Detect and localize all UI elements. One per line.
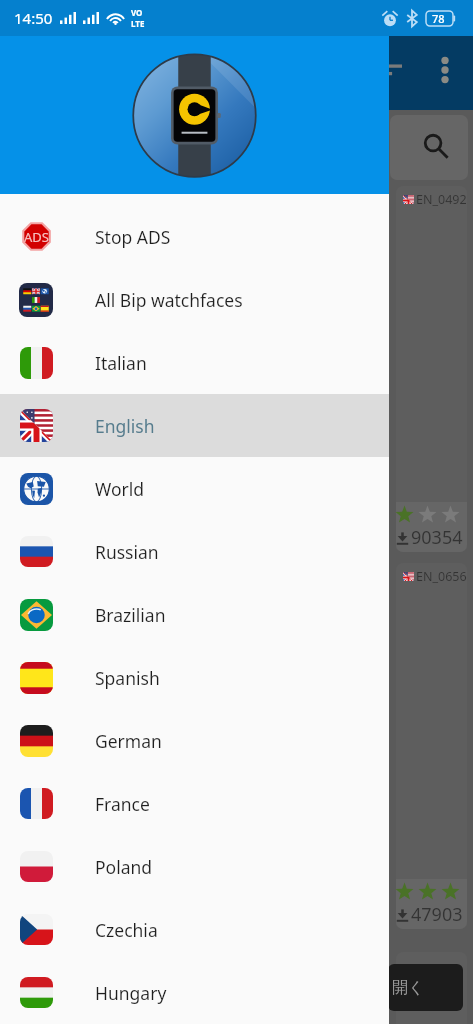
button[interactable]: Hungary <box>0 961 389 1024</box>
button[interactable] <box>396 186 467 552</box>
staticText: Czechia <box>95 918 158 942</box>
button[interactable]: ADS <box>0 205 389 268</box>
staticText: 開く <box>392 978 425 998</box>
staticText: German <box>95 729 162 753</box>
button[interactable] <box>396 563 467 929</box>
staticText: EN_0656 <box>416 568 467 585</box>
button[interactable]: 開く <box>388 964 463 1011</box>
button[interactable]: Czechia <box>0 898 389 961</box>
staticText: 78 <box>432 11 445 26</box>
staticText: Spanish <box>95 666 160 690</box>
button[interactable]: Poland <box>0 835 389 898</box>
staticText: Russian <box>95 540 159 564</box>
button[interactable]: Search <box>390 115 468 180</box>
staticText: 90354 <box>411 525 463 550</box>
button[interactable]: Sort <box>372 58 402 88</box>
button[interactable]: All Bip watchfaces <box>0 268 389 331</box>
staticText: Poland <box>95 855 153 879</box>
button[interactable]: More options <box>437 56 453 84</box>
button[interactable]: Italian <box>0 331 389 394</box>
staticText: Hungary <box>95 981 167 1005</box>
staticText: Brazilian <box>95 603 166 627</box>
staticText: VO <box>131 7 143 18</box>
staticText: World <box>95 477 145 501</box>
button[interactable]: Brazilian <box>0 583 389 646</box>
button[interactable]: Russian <box>0 520 389 583</box>
staticText: All Bip watchfaces <box>95 288 243 312</box>
staticText: LTE <box>131 18 145 29</box>
staticText: Stop ADS <box>95 225 171 249</box>
staticText: Italian <box>95 351 147 375</box>
staticText: English <box>95 414 155 438</box>
staticText: 14:50 <box>14 8 53 28</box>
button[interactable]: France <box>0 772 389 835</box>
button[interactable]: German <box>0 709 389 772</box>
staticText: EN_0492 <box>416 191 467 208</box>
staticText: France <box>95 792 150 816</box>
button[interactable]: World <box>0 457 389 520</box>
staticText: 47903 <box>411 902 463 927</box>
button[interactable]: English <box>0 394 389 457</box>
button[interactable]: Spanish <box>0 646 389 709</box>
staticText: ADS <box>24 228 49 246</box>
